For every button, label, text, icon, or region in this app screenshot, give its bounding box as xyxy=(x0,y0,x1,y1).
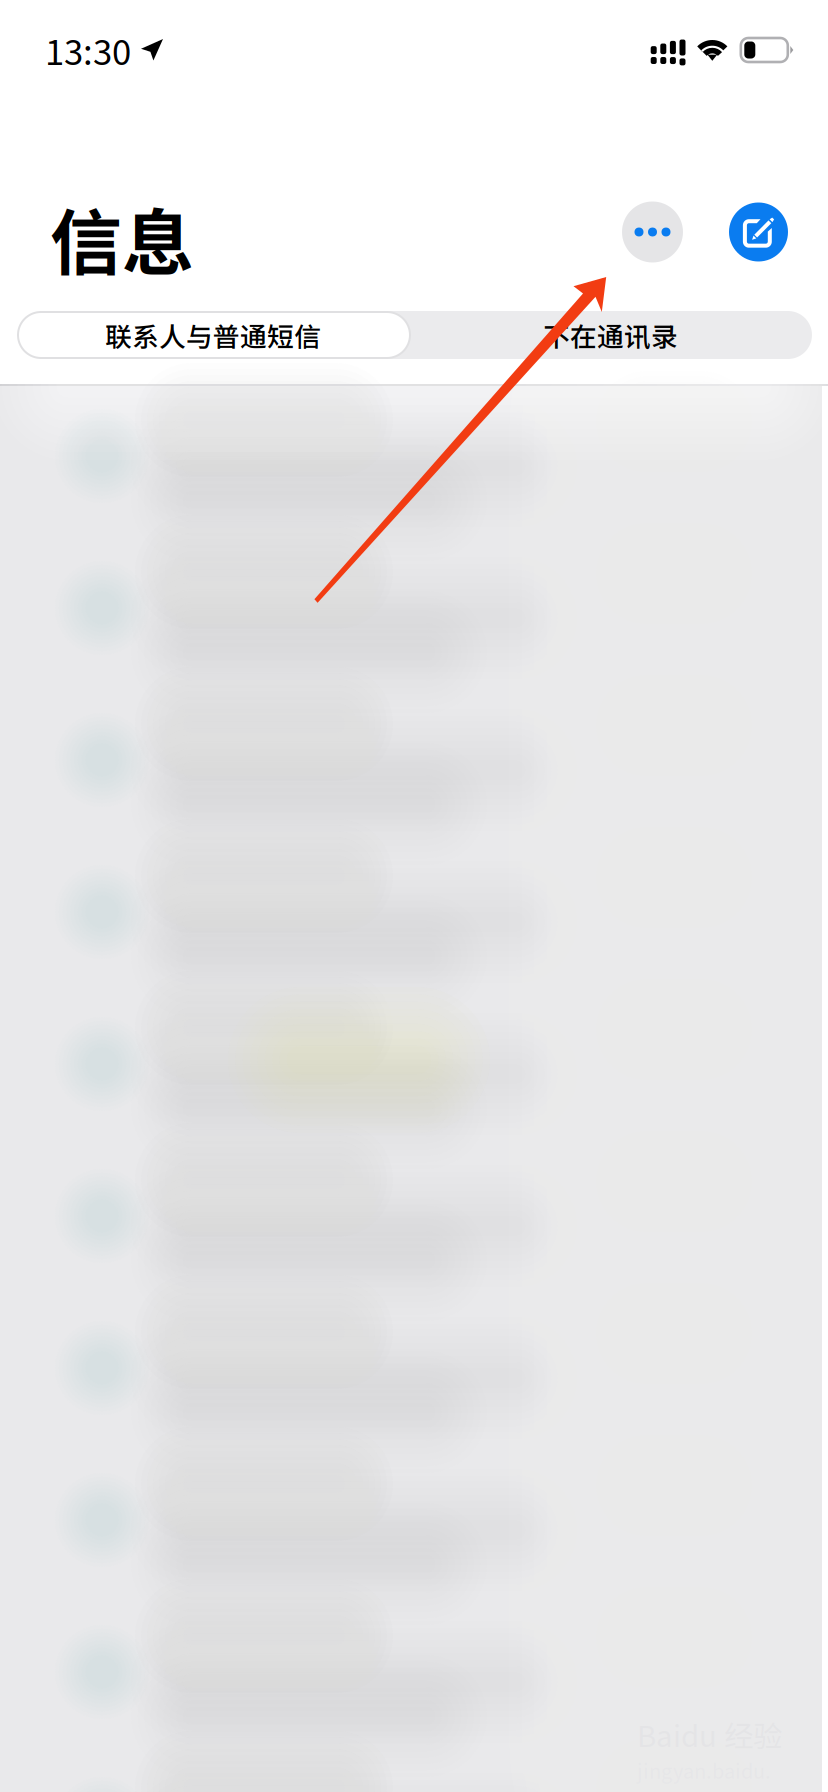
button[interactable]: 不在通讯录 xyxy=(409,311,812,359)
button[interactable]: 更多 xyxy=(622,201,683,262)
staticText: 13:30 xyxy=(45,25,131,75)
staticText: 联系人与普通短信 xyxy=(105,316,321,354)
staticText: 不在通讯录 xyxy=(543,316,678,354)
button[interactable]: 联系人与普通短信 xyxy=(17,311,409,359)
button[interactable]: 新建信息 xyxy=(729,202,788,261)
staticText: 信息 xyxy=(50,186,194,290)
